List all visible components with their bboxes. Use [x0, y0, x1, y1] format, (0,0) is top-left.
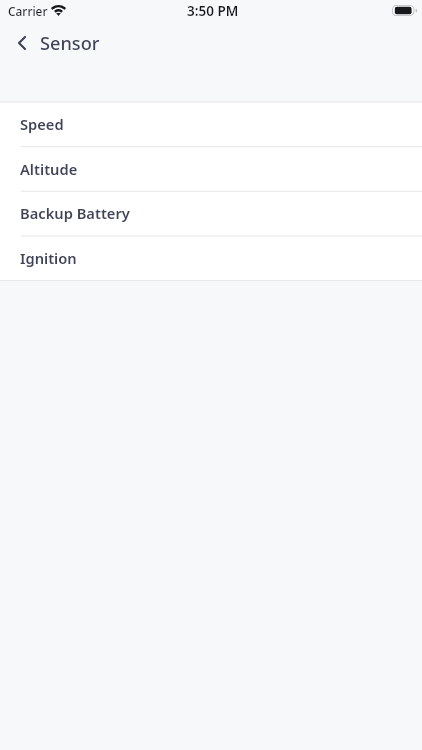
- staticText: Backup Battery: [20, 203, 130, 223]
- button[interactable]: Ignition: [0, 236, 422, 281]
- button[interactable]: Back: [0, 26, 114, 61]
- staticText: 3:50 PM: [187, 2, 239, 20]
- staticText: Carrier: [8, 3, 48, 19]
- staticText: Altitude: [20, 159, 78, 179]
- button[interactable]: Speed: [0, 102, 422, 147]
- staticText: Ignition: [20, 248, 77, 268]
- other: Back: [19, 37, 25, 49]
- staticText: Sensor: [40, 31, 100, 56]
- staticText: Speed: [20, 114, 64, 134]
- button[interactable]: Altitude: [0, 147, 422, 192]
- button[interactable]: Backup Battery: [0, 191, 422, 236]
